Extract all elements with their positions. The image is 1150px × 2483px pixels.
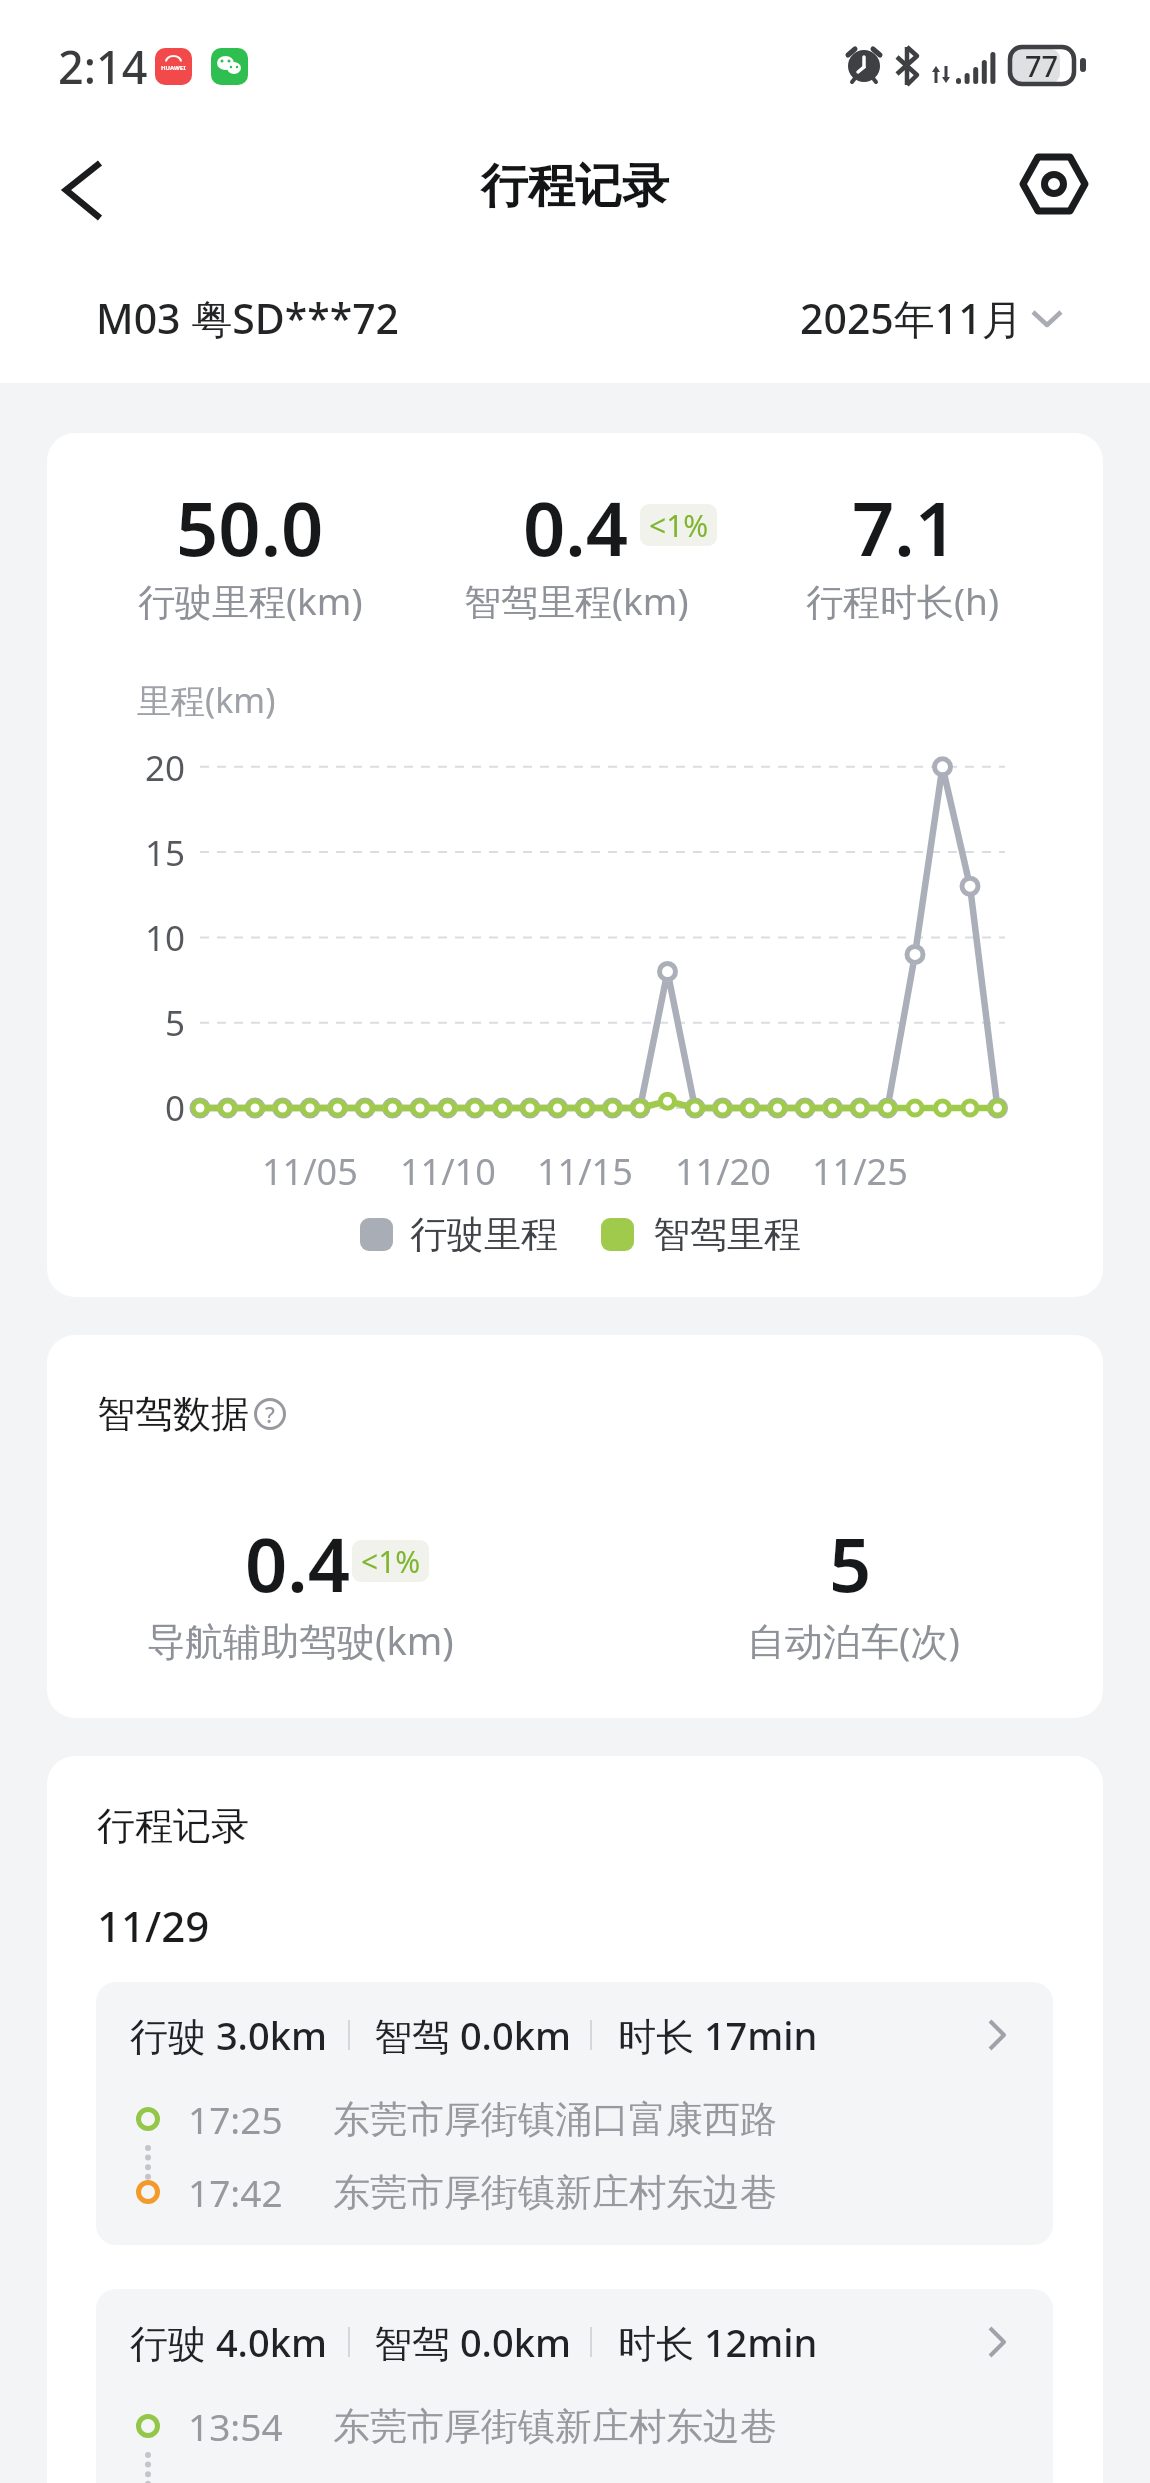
staticText: 时长 12min xyxy=(618,2316,818,2368)
staticText: 17:42 xyxy=(188,2167,283,2217)
staticText: 0.4 xyxy=(245,1513,351,1613)
staticText: 智驾 0.0km xyxy=(374,2009,571,2061)
staticText: 导航辅助驾驶(km) xyxy=(147,1614,454,1666)
staticText: 行程记录 xyxy=(97,1802,249,1850)
button[interactable] xyxy=(80,285,440,355)
staticText: <1% xyxy=(361,1541,421,1582)
staticText: 20 xyxy=(145,744,186,792)
staticText: <1% xyxy=(649,505,709,546)
staticText: 智驾数据 xyxy=(97,1390,249,1438)
staticText: 2025年11月 xyxy=(800,290,1023,346)
staticText: 11/29 xyxy=(97,1897,210,1954)
staticText: 时长 17min xyxy=(618,2009,818,2061)
staticText: 5 xyxy=(829,1513,872,1613)
staticText: ? xyxy=(265,1399,275,1429)
button[interactable] xyxy=(40,145,130,235)
staticText: 行程时长(h) xyxy=(806,575,1000,626)
staticText: 行驶 3.0km xyxy=(130,2009,327,2061)
staticText: 11/20 xyxy=(675,1147,771,1196)
staticText: 东莞市厚街镇新庄村东边巷 xyxy=(333,2169,777,2216)
staticText: 里程(km) xyxy=(137,677,276,723)
staticText: 行驶里程(km) xyxy=(138,575,363,626)
staticText: HUAWEI xyxy=(161,64,186,72)
staticText: 自动泊车(次) xyxy=(747,1614,960,1666)
staticText: 东莞市厚街镇涌口富康西路 xyxy=(333,2096,777,2143)
button[interactable] xyxy=(96,2289,1053,2483)
staticText: 东莞市厚街镇新庄村东边巷 xyxy=(333,2403,777,2450)
staticText: 11/05 xyxy=(262,1147,358,1196)
staticText: 11/25 xyxy=(812,1147,908,1196)
staticText: 10 xyxy=(145,914,186,962)
button[interactable] xyxy=(760,285,1075,355)
staticText: 行驶 4.0km xyxy=(130,2316,327,2368)
staticText: 11/10 xyxy=(400,1147,496,1196)
staticText: M03 粤SD***72 xyxy=(96,290,400,346)
staticText: 行程记录 xyxy=(481,157,669,216)
staticText: 智驾 0.0km xyxy=(374,2316,571,2368)
staticText: 2:14 xyxy=(58,36,148,97)
staticText: 11/15 xyxy=(537,1147,633,1196)
staticText: 行驶里程 xyxy=(410,1211,558,1258)
staticText: 50.0 xyxy=(176,477,324,577)
button[interactable] xyxy=(96,1982,1053,2245)
button[interactable] xyxy=(1008,140,1103,230)
staticText: 5 xyxy=(165,999,186,1047)
staticText: 0 xyxy=(165,1084,186,1132)
staticText: 智驾里程(km) xyxy=(464,575,689,626)
staticText: 77 xyxy=(1025,46,1059,85)
staticText: 7.1 xyxy=(852,477,958,577)
staticText: 15 xyxy=(145,829,186,877)
staticText: 17:25 xyxy=(188,2094,283,2144)
staticText: 13:54 xyxy=(188,2401,283,2451)
staticText: 智驾里程 xyxy=(653,1211,801,1258)
staticText: 0.4 xyxy=(523,477,629,577)
